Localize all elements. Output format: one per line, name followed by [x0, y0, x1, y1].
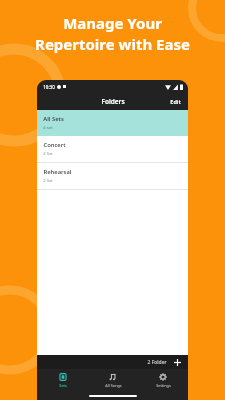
staticText: Manage Your [63, 13, 162, 33]
staticText: Folders [101, 97, 125, 106]
staticText: Concert [43, 141, 66, 149]
button[interactable]: Settings [138, 369, 188, 391]
button[interactable]: All Sets [37, 110, 188, 136]
staticText: 2 Set [43, 178, 53, 184]
staticText: Settings [156, 383, 171, 388]
staticText: All Sets [43, 115, 64, 123]
button[interactable]: Concert [37, 136, 188, 163]
staticText: 10:30 [43, 84, 55, 90]
staticText: All Songs [105, 383, 122, 388]
staticText: 2 Set [43, 151, 53, 157]
button[interactable]: Rehearsal [37, 163, 188, 190]
button[interactable]: Add folder [172, 357, 182, 367]
staticText: Repertoire with Ease [35, 34, 190, 54]
staticText: Edit [170, 98, 181, 105]
button[interactable]: Sets [37, 369, 88, 391]
staticText: Rehearsal [43, 168, 72, 176]
staticText: 2 Folder [147, 359, 167, 366]
button[interactable]: All Songs [88, 369, 138, 391]
button[interactable]: Edit [163, 95, 188, 108]
staticText: 4 set [43, 125, 53, 131]
staticText: Sets [59, 383, 67, 388]
